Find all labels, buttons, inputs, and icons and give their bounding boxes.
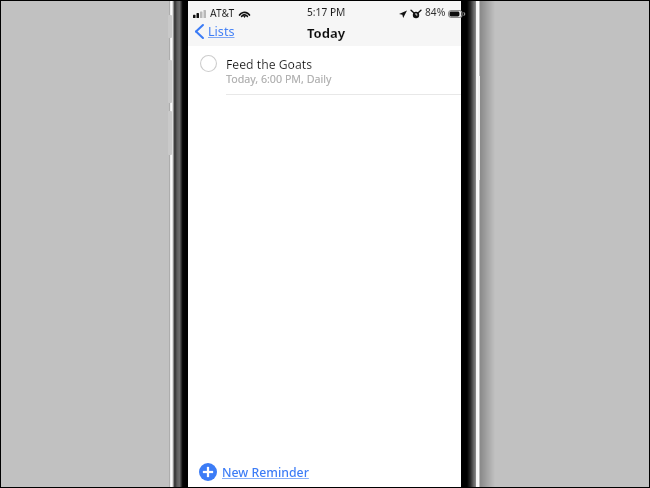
button[interactable]: Lists [191,20,239,43]
staticText: Feed the Goats [226,56,313,73]
staticText: New Reminder [222,464,309,481]
staticText: 84% [425,5,446,19]
staticText: AT&T [210,6,235,20]
button[interactable]: Feed the Goats [188,47,461,95]
staticText: Today [307,24,346,42]
staticText: Today, 6:00 PM, Daily [226,72,332,87]
staticText: 5:17 PM [307,5,346,19]
button[interactable]: New Reminder [195,460,313,484]
staticText: Lists [208,23,235,40]
